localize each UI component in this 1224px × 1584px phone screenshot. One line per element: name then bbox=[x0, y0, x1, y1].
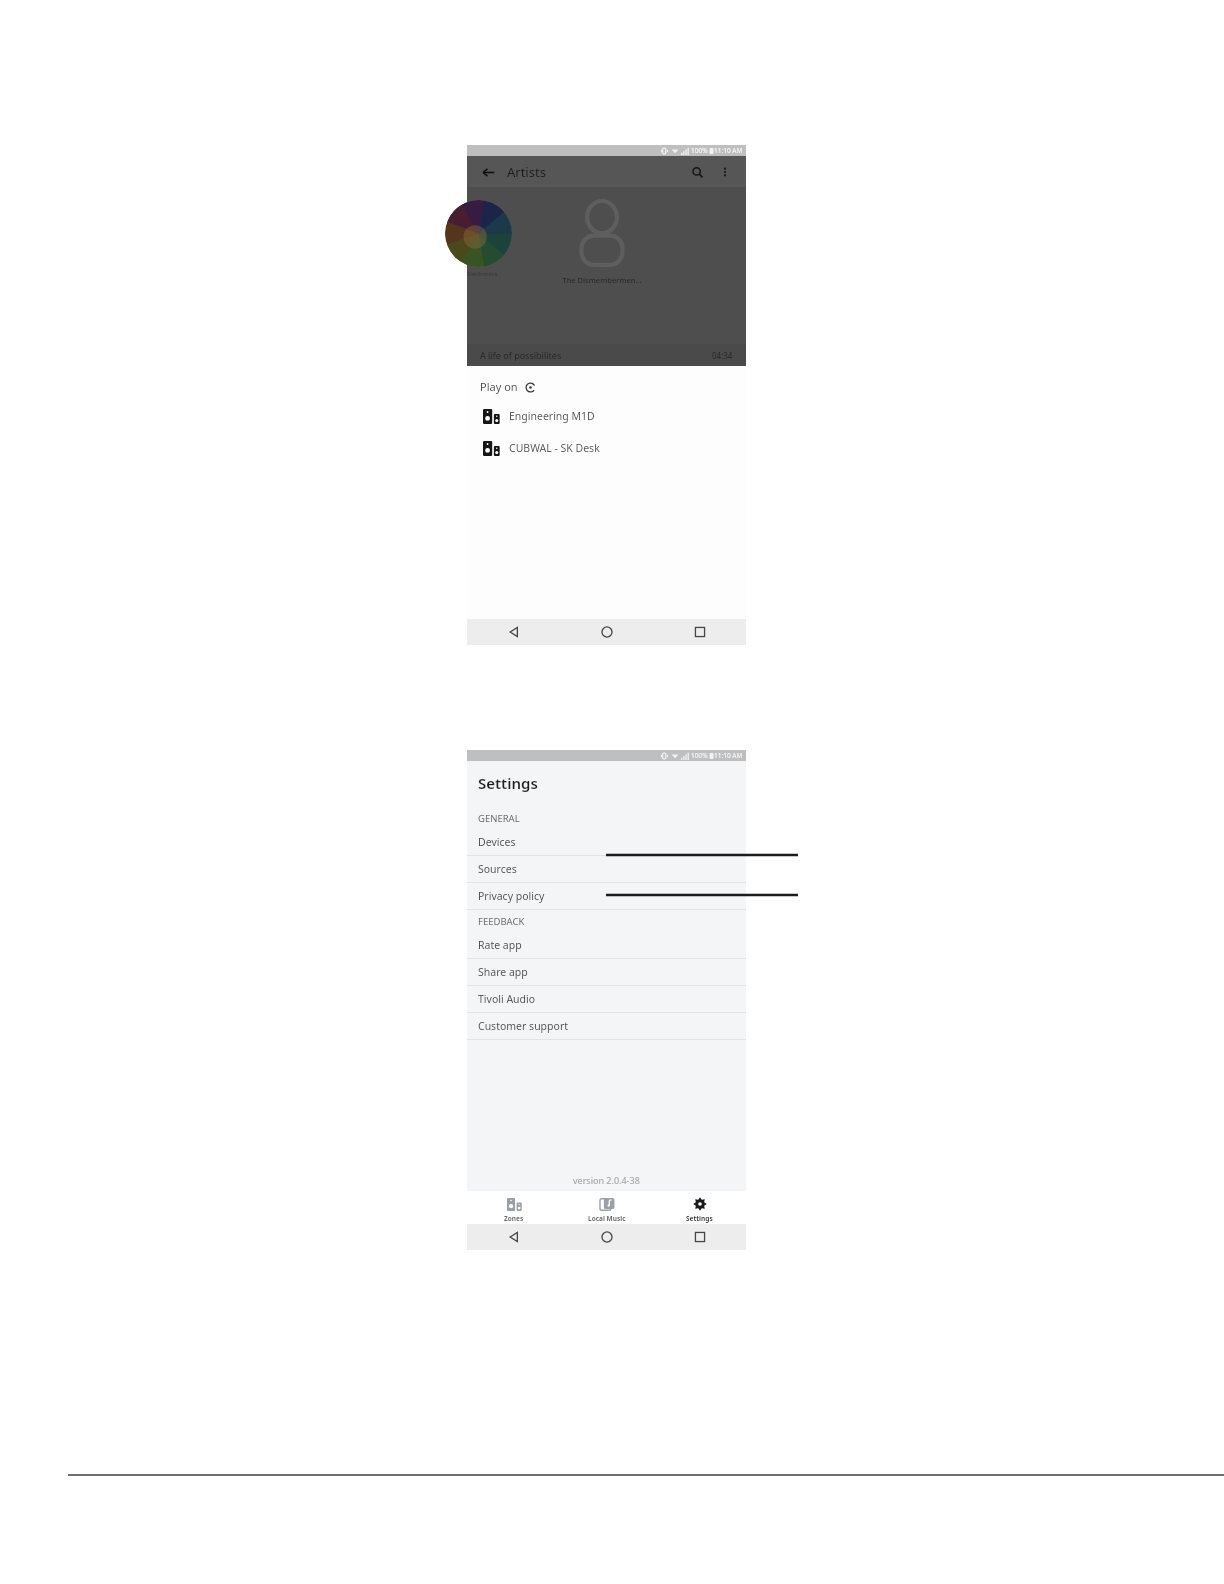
staticText: Devices bbox=[478, 835, 516, 849]
button[interactable]: Devices bbox=[467, 829, 746, 855]
staticText: Sources bbox=[478, 862, 517, 876]
button[interactable]: Share app bbox=[467, 959, 746, 985]
button[interactable]: A life of possibilites bbox=[467, 344, 746, 366]
button[interactable]: Settings bbox=[653, 1193, 746, 1223]
staticText: Tivoli Audio bbox=[478, 992, 536, 1006]
staticText: Artists bbox=[507, 163, 546, 181]
staticText: The Dismembermen… bbox=[562, 275, 642, 285]
button[interactable]: Zones bbox=[467, 1193, 560, 1223]
staticText: 100% bbox=[691, 751, 708, 760]
button[interactable]: Recents bbox=[653, 619, 746, 645]
button[interactable]: Recents bbox=[653, 1224, 746, 1250]
staticText: Rate app bbox=[478, 938, 522, 952]
button[interactable]: Privacy policy bbox=[467, 883, 746, 909]
button[interactable]: More options bbox=[714, 161, 736, 183]
staticText: Privacy policy bbox=[478, 889, 545, 903]
button[interactable]: Rate app bbox=[467, 932, 746, 958]
button[interactable] bbox=[445, 200, 512, 267]
button[interactable]: Customer support bbox=[467, 1013, 746, 1039]
button[interactable]: Back bbox=[477, 161, 499, 183]
staticText: Electronics bbox=[467, 270, 498, 278]
staticText: 11:10 AM bbox=[714, 751, 743, 760]
staticText: Engineering M1D bbox=[509, 409, 595, 423]
staticText: Share app bbox=[478, 965, 528, 979]
staticText: Settings bbox=[686, 1214, 713, 1223]
button[interactable]: Engineering M1D bbox=[467, 404, 746, 428]
button[interactable]: Sources bbox=[467, 856, 746, 882]
button[interactable]: Tivoli Audio bbox=[467, 986, 746, 1012]
button[interactable]: Search bbox=[686, 161, 708, 183]
button[interactable]: The Dismembermen… bbox=[537, 195, 667, 285]
staticText: Settings bbox=[478, 773, 538, 793]
staticText: GENERAL bbox=[478, 812, 520, 825]
staticText: 100% bbox=[691, 146, 708, 155]
staticText: A life of possibilites bbox=[480, 349, 562, 361]
staticText: 04:34 bbox=[712, 350, 733, 361]
button[interactable]: Home bbox=[560, 1224, 653, 1250]
button[interactable]: Home bbox=[560, 619, 653, 645]
button[interactable]: Back bbox=[467, 1224, 560, 1250]
staticText: Local Music bbox=[588, 1214, 626, 1223]
button[interactable]: Back bbox=[467, 619, 560, 645]
button[interactable]: Local Music bbox=[560, 1193, 653, 1223]
staticText: Customer support bbox=[478, 1019, 569, 1033]
button[interactable]: CUBWAL - SK Desk bbox=[467, 436, 746, 460]
staticText: version 2.0.4-38 bbox=[573, 1174, 640, 1186]
button[interactable]: Refresh bbox=[523, 380, 537, 394]
staticText: Play on bbox=[480, 379, 518, 394]
staticText: FEEDBACK bbox=[478, 915, 525, 928]
staticText: CUBWAL - SK Desk bbox=[509, 441, 600, 455]
staticText: 11:10 AM bbox=[714, 146, 743, 155]
staticText: Zones bbox=[504, 1214, 524, 1223]
